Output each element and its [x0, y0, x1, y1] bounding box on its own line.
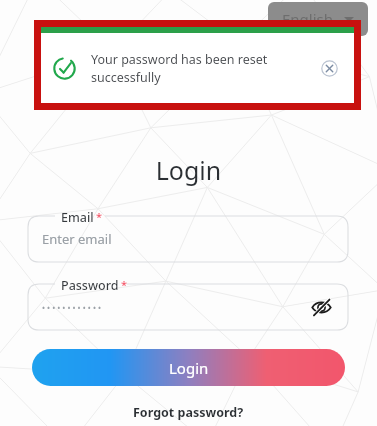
button[interactable]: Show password: [308, 294, 334, 320]
staticText: *: [96, 209, 103, 224]
staticText: *: [121, 277, 128, 292]
button[interactable]: Forgot password?: [127, 401, 250, 424]
staticText: • • • • • • • • • • • •: [42, 302, 308, 313]
staticText: Enter email: [42, 230, 112, 248]
staticText: Email: [61, 209, 94, 226]
staticText: Login: [169, 358, 209, 378]
staticText: Your password has been reset successfull…: [91, 51, 310, 86]
button[interactable]: • • • • • • • • • • • •: [28, 284, 348, 330]
staticText: English: [282, 9, 334, 29]
staticText: Password: [61, 277, 119, 294]
button[interactable]: English: [268, 2, 368, 36]
button[interactable]: Enter email: [28, 216, 348, 262]
staticText: Login: [0, 153, 377, 187]
button[interactable]: Close: [316, 55, 342, 81]
button[interactable]: Login: [32, 349, 345, 386]
staticText: Forgot password?: [133, 404, 244, 421]
